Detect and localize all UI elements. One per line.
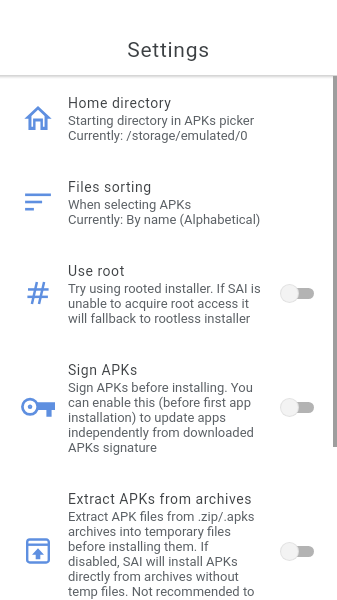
button[interactable]: Toggle setting (280, 281, 314, 305)
button[interactable]: Home directory (0, 75, 337, 159)
button[interactable]: Sign APKs (0, 342, 337, 471)
button[interactable]: Use root (0, 243, 337, 342)
staticText: Sign APKs before installing. You can ena… (68, 380, 254, 455)
staticText: Try using rooted installer. If SAI is un… (68, 281, 261, 326)
staticText: Sign APKs (68, 358, 138, 380)
staticText: Starting directory in APKs picker Curren… (68, 113, 255, 143)
button[interactable]: Files sorting (0, 159, 337, 243)
staticText: Use root (68, 259, 125, 281)
button[interactable]: Extract APKs from archives (0, 471, 337, 600)
button[interactable]: Toggle setting (280, 539, 314, 563)
staticText: When selecting APKs Currently: By name (… (68, 197, 261, 227)
button[interactable]: Toggle setting (280, 395, 314, 419)
staticText: Files sorting (68, 175, 152, 197)
staticText: Extract APK files from .zip/.apks archiv… (68, 509, 255, 600)
staticText: Extract APKs from archives (68, 487, 252, 509)
staticText: Home directory (68, 91, 172, 113)
staticText: Settings (127, 38, 210, 63)
